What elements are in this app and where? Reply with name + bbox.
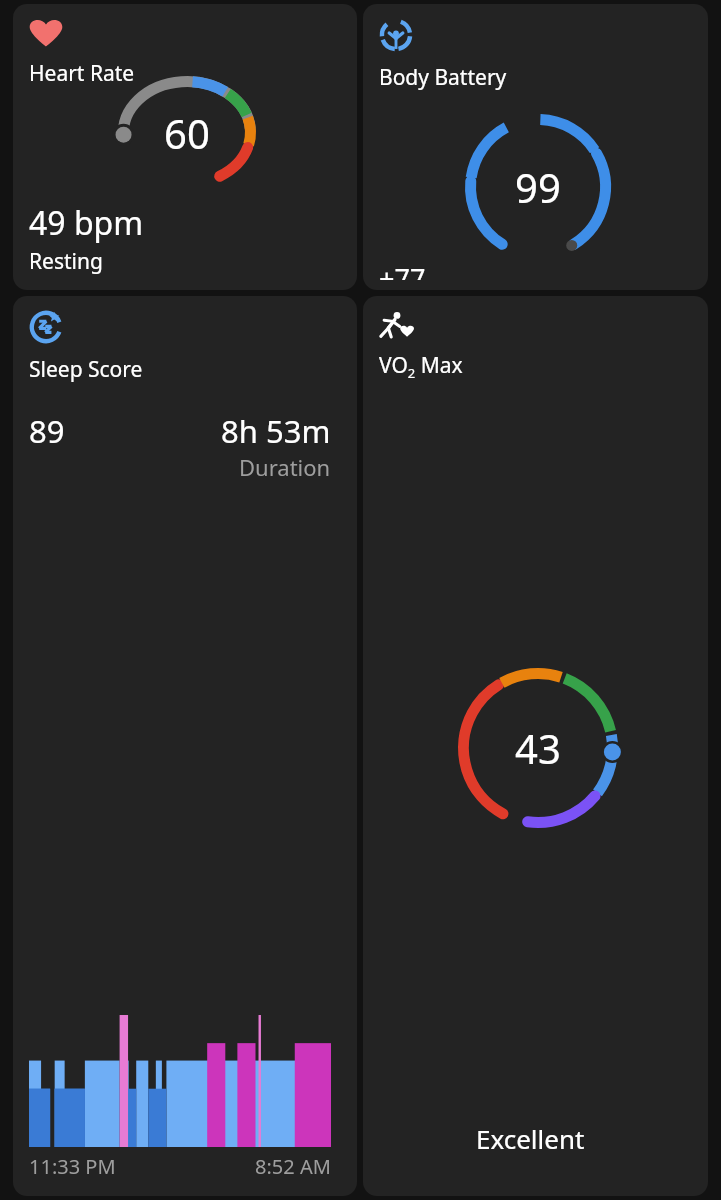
staticText: 8:52 AM [255, 1153, 331, 1180]
staticText: 43 [515, 721, 561, 775]
button[interactable]: VO2 Max [363, 296, 708, 1196]
other: Sleep score [29, 310, 63, 344]
other: Heart rate [29, 18, 63, 48]
staticText: Heart Rate [29, 59, 135, 88]
staticText: VO2 Max [379, 351, 463, 382]
staticText: 60 [164, 106, 210, 160]
staticText: Body Battery [379, 63, 507, 92]
button[interactable]: Body Battery [363, 4, 708, 290]
button[interactable]: Heart rate [13, 4, 357, 290]
staticText: Sleep Score [29, 355, 143, 384]
staticText: Excellent [476, 1121, 585, 1156]
staticText: 11:33 PM [29, 1153, 116, 1180]
other: Body Battery [379, 18, 413, 52]
staticText: +77 [379, 260, 426, 280]
staticText: 49 bpm [29, 201, 144, 245]
staticText: 89 [29, 410, 65, 452]
staticText: Duration [239, 452, 331, 482]
staticText: 8h 53m [221, 410, 331, 452]
button[interactable]: Sleep score [13, 296, 357, 1196]
staticText: 99 [515, 160, 561, 214]
staticText: Resting [29, 247, 103, 276]
other: VO2 Max [379, 310, 415, 340]
